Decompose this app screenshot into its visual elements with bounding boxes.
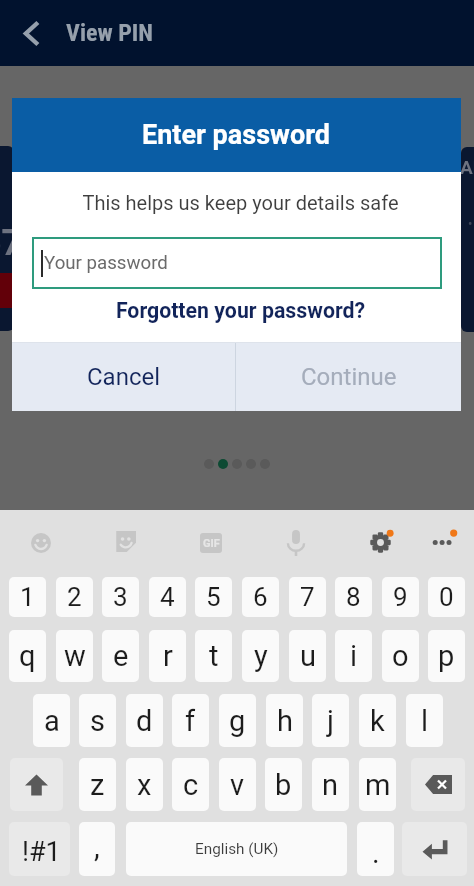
staticText: r bbox=[163, 639, 173, 673]
staticText: Cancel bbox=[87, 363, 161, 391]
button[interactable]: Back bbox=[0, 0, 62, 66]
staticText: f bbox=[185, 704, 196, 738]
staticText: 9 bbox=[393, 582, 408, 612]
staticText: g bbox=[229, 704, 246, 738]
staticText: z bbox=[90, 768, 105, 802]
staticText: e bbox=[113, 639, 129, 673]
staticText: Your password bbox=[44, 252, 168, 274]
staticText: u bbox=[300, 639, 316, 673]
staticText: p bbox=[438, 639, 455, 673]
staticText: t bbox=[209, 639, 219, 673]
staticText: !#1 bbox=[22, 836, 61, 868]
staticText: n bbox=[322, 768, 339, 802]
staticText: 0 bbox=[439, 582, 454, 612]
button[interactable]: 0 bbox=[428, 577, 465, 617]
staticText: i bbox=[350, 639, 358, 673]
button[interactable]: Stickers bbox=[107, 523, 144, 560]
button[interactable]: r bbox=[149, 630, 186, 682]
staticText: y bbox=[254, 639, 268, 673]
button[interactable]: j bbox=[312, 694, 349, 747]
button[interactable]: v bbox=[219, 758, 256, 811]
button[interactable]: 3 bbox=[102, 577, 139, 617]
staticText: c bbox=[183, 768, 199, 802]
staticText: k bbox=[370, 704, 385, 738]
staticText: l bbox=[421, 704, 429, 738]
button[interactable]: w bbox=[56, 630, 93, 682]
staticText: 2 bbox=[67, 582, 82, 612]
button[interactable]: o bbox=[382, 630, 419, 682]
button[interactable]: 7 bbox=[289, 577, 326, 617]
button[interactable]: Continue bbox=[236, 343, 461, 411]
staticText: ANTANDER bbox=[461, 156, 474, 178]
button[interactable]: p bbox=[428, 630, 465, 682]
button[interactable]: 9 bbox=[382, 577, 419, 617]
button[interactable]: . bbox=[357, 822, 394, 876]
button[interactable]: z bbox=[79, 758, 116, 811]
button[interactable]: m bbox=[359, 758, 396, 811]
staticText: j bbox=[327, 704, 334, 738]
button[interactable]: x bbox=[126, 758, 163, 811]
staticText: v bbox=[230, 768, 245, 802]
button[interactable]: Voice input bbox=[279, 522, 313, 564]
staticText: 8 bbox=[346, 582, 361, 612]
button[interactable]: b bbox=[265, 758, 302, 811]
button[interactable]: 1 bbox=[9, 577, 46, 617]
button[interactable]: More options bbox=[422, 521, 465, 556]
staticText: q bbox=[19, 639, 36, 673]
button[interactable]: g bbox=[219, 694, 256, 747]
button[interactable]: , bbox=[79, 822, 115, 876]
button[interactable]: Emoji bbox=[23, 525, 59, 561]
staticText: h bbox=[277, 704, 293, 738]
staticText: This helps us keep your details safe bbox=[16, 191, 465, 214]
button[interactable]: GIF bbox=[192, 525, 230, 561]
button[interactable]: Cancel bbox=[12, 343, 235, 411]
button[interactable]: n bbox=[312, 758, 349, 811]
button[interactable]: !#1 bbox=[9, 822, 70, 876]
button[interactable]: Backspace bbox=[411, 758, 465, 811]
staticText: 3 bbox=[113, 582, 128, 612]
button[interactable]: 2 bbox=[56, 577, 93, 617]
button[interactable]: y bbox=[242, 630, 279, 682]
button[interactable]: s bbox=[79, 694, 116, 747]
button[interactable]: f bbox=[172, 694, 209, 747]
staticText: 5678 bbox=[0, 222, 14, 264]
staticText: GIF bbox=[203, 537, 220, 550]
button[interactable]: 5 bbox=[195, 577, 232, 617]
staticText: d bbox=[136, 704, 153, 738]
staticText: o bbox=[392, 639, 409, 673]
button[interactable]: k bbox=[359, 694, 396, 747]
button[interactable]: l bbox=[406, 694, 443, 747]
button[interactable]: h bbox=[266, 694, 303, 747]
button[interactable]: e bbox=[102, 630, 139, 682]
button[interactable]: 4 bbox=[149, 577, 186, 617]
button[interactable]: t bbox=[195, 630, 232, 682]
staticText: , bbox=[94, 830, 100, 864]
button[interactable]: English (UK) bbox=[126, 822, 347, 876]
staticText: 6 bbox=[253, 582, 268, 612]
button[interactable]: a bbox=[33, 694, 70, 747]
staticText: x bbox=[137, 768, 152, 802]
staticText: s bbox=[90, 704, 105, 738]
staticText: . bbox=[372, 836, 380, 870]
button[interactable]: 8 bbox=[335, 577, 372, 617]
button[interactable]: Settings bbox=[361, 523, 400, 562]
staticText: English (UK) bbox=[195, 840, 279, 858]
staticText: w bbox=[64, 639, 86, 673]
button[interactable]: Shift bbox=[10, 758, 63, 811]
button[interactable]: Enter bbox=[402, 822, 467, 876]
staticText: 1 bbox=[20, 582, 35, 612]
button[interactable]: Your password bbox=[32, 237, 442, 289]
staticText: 7 bbox=[300, 582, 315, 612]
staticText: Enter password bbox=[142, 119, 331, 151]
button[interactable]: q bbox=[9, 630, 46, 682]
button[interactable]: i bbox=[335, 630, 372, 682]
button[interactable]: c bbox=[172, 758, 209, 811]
staticText: 5 bbox=[206, 582, 221, 612]
staticText: 4 bbox=[160, 582, 175, 612]
staticText: m bbox=[365, 768, 391, 802]
staticText: View PIN bbox=[66, 19, 153, 47]
button[interactable]: 6 bbox=[242, 577, 279, 617]
button[interactable]: d bbox=[126, 694, 163, 747]
button[interactable]: u bbox=[289, 630, 326, 682]
button[interactable]: Forgotten your password? bbox=[16, 298, 465, 323]
